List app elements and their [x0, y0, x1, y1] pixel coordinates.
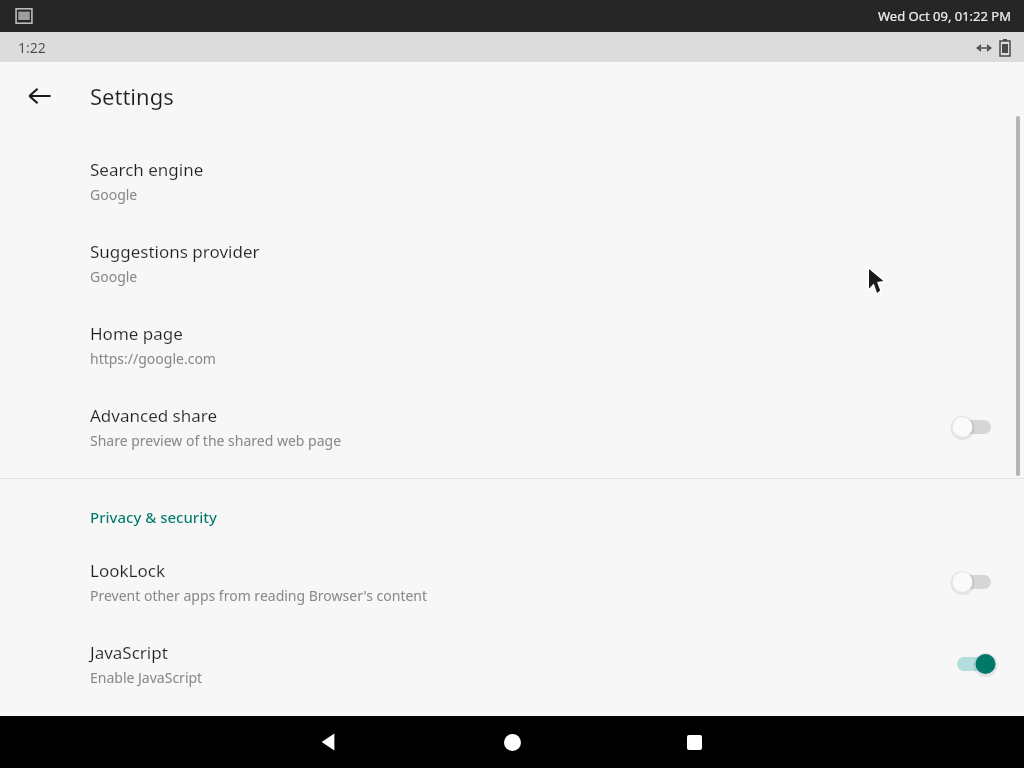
staticText: Google	[90, 185, 138, 204]
staticText: Settings	[90, 81, 174, 111]
button[interactable]: LookLock	[0, 527, 1024, 605]
button[interactable]: Advanced share	[0, 368, 1024, 450]
staticText: 1:22	[18, 38, 46, 57]
button[interactable]: Toggle off	[948, 411, 1000, 443]
staticText: Search engine	[90, 158, 204, 181]
staticText: Share preview of the shared web page	[90, 431, 342, 450]
button[interactable]: JavaScript	[0, 605, 1024, 687]
staticText: Google	[90, 267, 138, 286]
button[interactable]: Home page	[0, 286, 1024, 368]
button[interactable]: Back	[18, 74, 62, 118]
button[interactable]: Search engine	[0, 130, 1024, 204]
staticText: Suggestions provider	[90, 240, 260, 263]
button[interactable]: Toggle on	[948, 648, 1000, 680]
button[interactable]: Recent apps	[666, 716, 722, 768]
staticText: https://google.com	[90, 349, 216, 368]
staticText: Enable JavaScript	[90, 668, 203, 687]
button[interactable]: Home	[484, 716, 540, 768]
button[interactable]: Suggestions provider	[0, 204, 1024, 286]
button[interactable]: Toggle off	[948, 566, 1000, 598]
staticText: Privacy & security	[90, 507, 217, 527]
staticText: Wed Oct 09, 01:22 PM	[878, 7, 1012, 25]
staticText: JavaScript	[90, 641, 168, 664]
staticText: Prevent other apps from reading Browser'…	[90, 586, 428, 605]
staticText: LookLock	[90, 559, 165, 582]
staticText: Advanced share	[90, 404, 218, 427]
button[interactable]: Back	[300, 716, 356, 768]
staticText: Home page	[90, 322, 183, 345]
